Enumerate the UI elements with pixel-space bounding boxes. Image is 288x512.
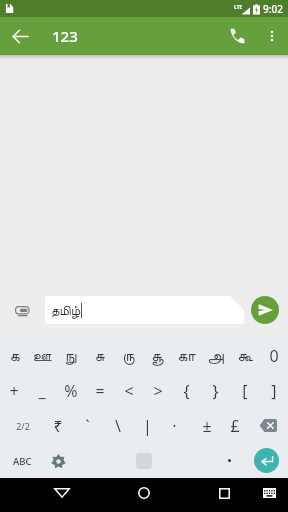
button[interactable]: ஊ bbox=[28, 338, 56, 373]
button[interactable]: Backspace bbox=[252, 408, 284, 443]
button[interactable]: 2/2 bbox=[8, 408, 37, 443]
staticText: அ bbox=[207, 348, 224, 364]
staticText: நு bbox=[65, 348, 77, 364]
staticText: ] bbox=[271, 380, 277, 402]
button[interactable]: £ bbox=[220, 408, 249, 443]
button[interactable]: | bbox=[133, 408, 162, 443]
staticText: [ bbox=[242, 380, 248, 402]
staticText: க bbox=[9, 348, 20, 364]
button[interactable]: Back bbox=[40, 478, 84, 512]
staticText: ± bbox=[202, 415, 212, 437]
button[interactable]: சு bbox=[85, 338, 114, 373]
button[interactable]: Space bbox=[136, 453, 152, 469]
staticText: \ bbox=[115, 415, 121, 437]
button[interactable]: கா bbox=[172, 338, 201, 373]
button[interactable]: கூ bbox=[230, 338, 259, 373]
staticText: கூ bbox=[237, 348, 253, 364]
staticText: 9:02 bbox=[263, 2, 283, 16]
button[interactable]: \ bbox=[103, 408, 132, 443]
staticText: 0 bbox=[269, 345, 279, 367]
staticText: 2/2 bbox=[16, 420, 30, 432]
button[interactable]: More options bbox=[256, 20, 288, 52]
staticText: | bbox=[143, 415, 152, 437]
staticText: சு bbox=[94, 348, 105, 364]
button[interactable]: { bbox=[172, 373, 201, 408]
staticText: ஊ bbox=[32, 348, 52, 364]
button[interactable]: < bbox=[114, 373, 143, 408]
staticText: < bbox=[124, 380, 134, 402]
button[interactable]: Navigate up bbox=[0, 17, 40, 55]
button[interactable]: Period bbox=[228, 459, 231, 462]
button[interactable]: ரு bbox=[114, 338, 143, 373]
staticText: ரு bbox=[122, 348, 135, 364]
button[interactable]: = bbox=[85, 373, 114, 408]
staticText: > bbox=[153, 380, 163, 402]
button[interactable]: Recent apps bbox=[202, 478, 246, 512]
button[interactable]: அ bbox=[201, 338, 230, 373]
button[interactable]: · bbox=[160, 408, 189, 443]
button[interactable]: நு bbox=[56, 338, 85, 373]
button[interactable]: ] bbox=[259, 373, 288, 408]
staticText: £ bbox=[230, 415, 240, 437]
button[interactable]: % bbox=[56, 373, 85, 408]
button[interactable]: க bbox=[0, 338, 28, 373]
staticText: 123 bbox=[52, 26, 78, 46]
staticText: · bbox=[172, 415, 177, 437]
staticText: தமிழ் bbox=[51, 305, 81, 318]
button[interactable]: தமிழ் bbox=[45, 296, 244, 324]
button[interactable]: ABC bbox=[6, 445, 38, 477]
button[interactable]: Home bbox=[122, 478, 166, 512]
button[interactable]: _ bbox=[28, 373, 56, 408]
staticText: + bbox=[9, 380, 19, 402]
button[interactable]: Call bbox=[218, 17, 256, 55]
staticText: ` bbox=[85, 415, 90, 437]
button[interactable]: } bbox=[201, 373, 230, 408]
button[interactable]: Send bbox=[251, 296, 279, 324]
button[interactable]: Change keyboard bbox=[251, 478, 287, 512]
button[interactable]: ` bbox=[73, 408, 102, 443]
staticText: % bbox=[64, 380, 78, 402]
button[interactable]: 0 bbox=[259, 338, 288, 373]
button[interactable]: Attach bbox=[7, 296, 37, 324]
staticText: = bbox=[95, 380, 105, 402]
button[interactable]: ± bbox=[192, 408, 221, 443]
staticText: _ bbox=[38, 380, 46, 402]
button[interactable]: சூ bbox=[143, 338, 172, 373]
staticText: } bbox=[212, 380, 219, 402]
staticText: { bbox=[183, 380, 190, 402]
button[interactable]: ₹ bbox=[43, 408, 72, 443]
staticText: சூ bbox=[151, 348, 164, 364]
staticText: ABC bbox=[13, 455, 32, 468]
button[interactable]: [ bbox=[230, 373, 259, 408]
button[interactable]: Settings bbox=[44, 447, 72, 475]
staticText: LTE bbox=[234, 4, 243, 11]
button[interactable]: + bbox=[0, 373, 28, 408]
button[interactable]: > bbox=[143, 373, 172, 408]
button[interactable]: Enter bbox=[254, 448, 279, 473]
staticText: கா bbox=[177, 348, 196, 364]
staticText: ₹ bbox=[53, 415, 63, 437]
